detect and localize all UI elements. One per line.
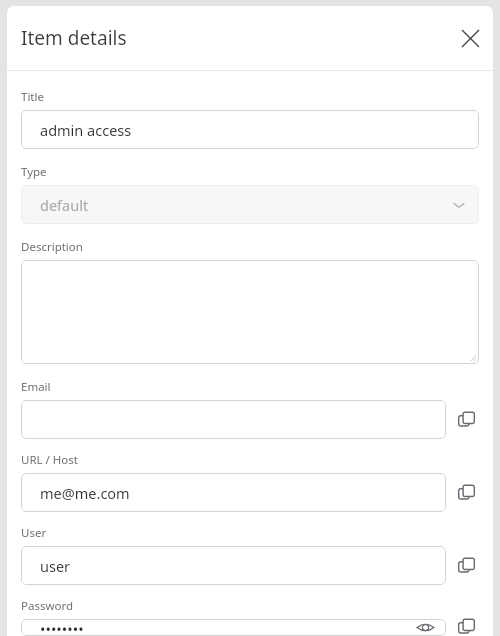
button[interactable]: Copy	[453, 480, 479, 506]
staticText: User	[21, 525, 47, 541]
button[interactable]: user	[21, 546, 446, 585]
staticText: default	[40, 195, 447, 215]
staticText: Password	[21, 598, 74, 614]
staticText: Description	[21, 239, 83, 255]
staticText: ••••••••	[40, 619, 412, 636]
button[interactable]: me@me.com	[21, 473, 446, 512]
staticText: Email	[21, 379, 51, 395]
button[interactable]: Close	[453, 21, 487, 55]
button[interactable]: admin access	[21, 110, 479, 149]
staticText: Item details	[21, 25, 127, 51]
button[interactable]: default	[21, 185, 479, 224]
staticText: URL / Host	[21, 452, 78, 468]
staticText: Type	[21, 164, 47, 180]
staticText: user	[40, 556, 438, 576]
button[interactable]	[21, 400, 446, 439]
button[interactable]: Copy	[453, 553, 479, 579]
button[interactable]	[21, 260, 479, 364]
staticText: me@me.com	[40, 483, 438, 503]
staticText: Title	[21, 89, 44, 105]
button[interactable]: Select type	[447, 193, 471, 217]
button[interactable]: Show password	[412, 619, 438, 636]
button[interactable]: Copy	[453, 619, 479, 636]
button[interactable]: Copy	[453, 407, 479, 433]
button[interactable]: ••••••••	[21, 619, 446, 636]
staticText: admin access	[40, 120, 471, 140]
